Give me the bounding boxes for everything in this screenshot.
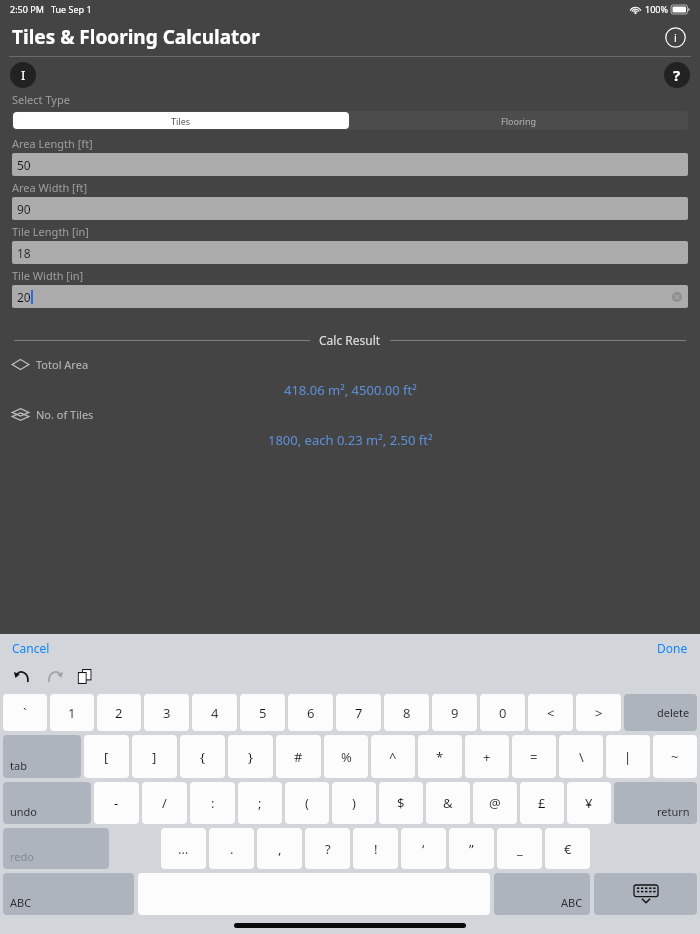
button[interactable]: = bbox=[512, 735, 556, 778]
button[interactable]: Hide keyboard bbox=[594, 873, 697, 915]
staticText: , bbox=[278, 840, 282, 858]
button[interactable]: : bbox=[190, 782, 235, 824]
button[interactable]: Cancel bbox=[12, 640, 50, 656]
staticText: # bbox=[294, 748, 303, 766]
button[interactable]: Done bbox=[657, 640, 688, 656]
button[interactable]: ~ bbox=[653, 735, 697, 778]
button[interactable]: ! bbox=[353, 828, 398, 869]
staticText: 20 bbox=[17, 289, 31, 305]
button[interactable]: ‘ bbox=[401, 828, 446, 869]
staticText: Tue Sep 1 bbox=[51, 3, 92, 15]
button[interactable]: / bbox=[142, 782, 187, 824]
staticText: Tiles bbox=[171, 115, 191, 127]
button[interactable]: Clear text bbox=[672, 292, 682, 302]
button[interactable]: ` bbox=[3, 694, 47, 731]
button[interactable]: 50 bbox=[12, 153, 688, 176]
button[interactable]: _ bbox=[497, 828, 542, 869]
staticText: delete bbox=[657, 705, 690, 720]
button[interactable]: 18 bbox=[12, 241, 688, 264]
button[interactable]: . bbox=[209, 828, 254, 869]
staticText: > bbox=[595, 704, 603, 722]
button[interactable]: 4 bbox=[192, 694, 237, 731]
staticText: ¥ bbox=[585, 794, 593, 812]
staticText: Area Length [ft] bbox=[12, 136, 93, 151]
button[interactable]: + bbox=[465, 735, 509, 778]
button[interactable]: 20 bbox=[12, 285, 688, 308]
button[interactable]: { bbox=[180, 735, 225, 778]
staticText: % bbox=[341, 748, 352, 766]
button[interactable]: redo bbox=[3, 828, 109, 869]
staticText: < bbox=[547, 704, 555, 722]
button[interactable]: Undo bbox=[13, 667, 32, 686]
button[interactable]: ¥ bbox=[567, 782, 611, 824]
staticText: { bbox=[200, 748, 205, 766]
button[interactable]: 9 bbox=[432, 694, 477, 731]
button[interactable]: Help bbox=[664, 62, 690, 88]
staticText: * bbox=[436, 748, 444, 766]
button[interactable]: 6 bbox=[288, 694, 333, 731]
staticText: ( bbox=[305, 794, 309, 812]
button[interactable]: Flooring bbox=[350, 111, 688, 130]
button[interactable]: - bbox=[94, 782, 139, 824]
button[interactable]: 90 bbox=[12, 197, 688, 220]
button[interactable]: Tiles bbox=[13, 112, 349, 129]
button[interactable]: ; bbox=[238, 782, 282, 824]
button[interactable]: ABC bbox=[3, 873, 134, 915]
button[interactable]: ^ bbox=[371, 735, 415, 778]
button[interactable]: € bbox=[545, 828, 590, 869]
button[interactable]: < bbox=[528, 694, 573, 731]
staticText: 9 bbox=[451, 704, 459, 722]
staticText: € bbox=[564, 840, 572, 858]
staticText: } bbox=[248, 748, 253, 766]
button[interactable]: 0 bbox=[480, 694, 525, 731]
staticText: 1800, each 0.23 m², 2.50 ft² bbox=[268, 431, 433, 449]
button[interactable]: 7 bbox=[336, 694, 381, 731]
button[interactable]: 5 bbox=[240, 694, 285, 731]
staticText: - bbox=[114, 794, 119, 812]
button[interactable]: # bbox=[276, 735, 321, 778]
button[interactable]: $ bbox=[379, 782, 423, 824]
button[interactable]: 1 bbox=[50, 694, 94, 731]
staticText: ABC bbox=[561, 895, 583, 910]
button[interactable]: ” bbox=[449, 828, 494, 869]
button[interactable]: & bbox=[426, 782, 470, 824]
button[interactable]: ] bbox=[132, 735, 177, 778]
button[interactable]: ) bbox=[332, 782, 376, 824]
button[interactable]: £ bbox=[520, 782, 564, 824]
button[interactable]: delete bbox=[624, 694, 697, 731]
staticText: i bbox=[674, 30, 677, 45]
button[interactable]: 2 bbox=[97, 694, 141, 731]
button[interactable]: undo bbox=[3, 782, 91, 824]
staticText: Tiles & Flooring Calculator bbox=[12, 24, 260, 50]
button[interactable]: | bbox=[606, 735, 650, 778]
button[interactable]: , bbox=[257, 828, 302, 869]
button[interactable]: ABC bbox=[494, 873, 590, 915]
button[interactable]: [ bbox=[84, 735, 129, 778]
staticText: 2 bbox=[115, 704, 123, 722]
staticText: 6 bbox=[307, 704, 315, 722]
staticText: return bbox=[657, 804, 690, 819]
staticText: / bbox=[162, 794, 167, 812]
button[interactable]: Info bbox=[661, 23, 689, 51]
staticText: 5 bbox=[259, 704, 267, 722]
button[interactable]: tab bbox=[3, 735, 81, 778]
button[interactable]: return bbox=[614, 782, 697, 824]
button[interactable]: Text cursor bbox=[10, 62, 36, 88]
button[interactable]: * bbox=[418, 735, 462, 778]
button[interactable]: > bbox=[576, 694, 621, 731]
button[interactable]: @ bbox=[473, 782, 517, 824]
button[interactable]: Redo bbox=[45, 667, 64, 686]
button[interactable]: … bbox=[161, 828, 206, 869]
staticText: Area Width [ft] bbox=[12, 180, 88, 195]
staticText: 90 bbox=[17, 201, 31, 217]
button[interactable]: 8 bbox=[384, 694, 429, 731]
staticText: ] bbox=[152, 748, 157, 766]
button[interactable]: ( bbox=[285, 782, 329, 824]
button[interactable]: } bbox=[228, 735, 273, 778]
button[interactable]: Paste bbox=[77, 669, 92, 684]
button[interactable]: 3 bbox=[144, 694, 189, 731]
button[interactable]: % bbox=[324, 735, 368, 778]
button[interactable]: ? bbox=[305, 828, 350, 869]
button[interactable]: \ bbox=[559, 735, 603, 778]
